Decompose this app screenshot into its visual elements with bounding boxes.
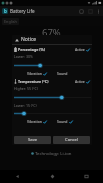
button[interactable]: Vibration — [27, 119, 47, 124]
staticText: Temperature (°C) — [18, 79, 49, 84]
staticText: English — [4, 19, 17, 24]
staticText: Technology: Li-ion — [35, 150, 72, 156]
staticText: Vibration — [27, 71, 42, 76]
staticText: Active — [75, 47, 85, 52]
staticText: Percentage (%) — [18, 47, 45, 52]
button[interactable]: Active — [75, 47, 90, 52]
button[interactable]: Settings — [86, 7, 95, 16]
staticText: Cancel — [65, 137, 79, 143]
button[interactable]: Save — [14, 136, 51, 144]
button[interactable]: Slider — [14, 95, 91, 100]
button[interactable]: Cancel — [53, 136, 90, 144]
button[interactable]: English — [4, 19, 17, 24]
staticText: Battery Life — [10, 8, 35, 14]
button[interactable]: Refresh — [77, 7, 86, 16]
button[interactable]: Sound — [57, 71, 73, 76]
staticText: Save — [28, 137, 38, 143]
button[interactable]: Back — [0, 170, 35, 183]
staticText: b — [4, 8, 7, 14]
staticText: Sound — [57, 71, 68, 76]
button[interactable]: Home — [35, 170, 69, 183]
staticText: 67% — [42, 26, 61, 36]
staticText: Vibration — [27, 119, 42, 124]
button[interactable]: Vibration — [27, 71, 47, 76]
staticText: Higher: 55 (°C) — [14, 86, 38, 91]
button[interactable]: Active — [75, 79, 90, 84]
button[interactable]: Sound — [57, 119, 73, 124]
button[interactable]: Slider — [14, 63, 91, 68]
staticText: Active — [75, 79, 85, 84]
button[interactable]: More options — [95, 8, 102, 15]
button[interactable]: Recent apps — [69, 170, 103, 183]
button[interactable]: Slider — [14, 111, 91, 116]
staticText: Notice — [21, 36, 37, 43]
staticText: Lower: 15 (°C) — [14, 103, 37, 108]
staticText: Lower: 30% — [14, 54, 33, 59]
staticText: Sound — [57, 119, 68, 124]
